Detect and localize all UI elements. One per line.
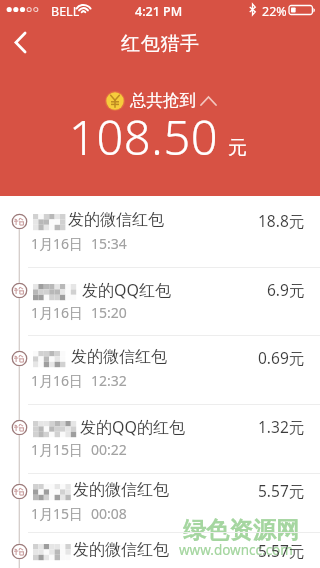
staticText: 1月16日 (31, 234, 84, 253)
staticText: 发的QQ红包 (82, 279, 171, 301)
button[interactable]: 发的QQ红包 (0, 269, 320, 324)
staticText: 1月15日 (31, 440, 84, 459)
button[interactable]: 发的微信红包 (0, 200, 320, 255)
staticText: 绿色资源网 (183, 516, 299, 545)
staticText: 5.57元 (258, 480, 305, 501)
staticText: 18.8元 (258, 210, 305, 231)
staticText: 总共抢到 (130, 90, 196, 111)
staticText: 00:22 (91, 440, 127, 459)
staticText: 1月16日 (31, 303, 84, 322)
button[interactable]: 发的微信红包 (0, 337, 320, 392)
staticText: BELL (51, 3, 80, 20)
staticText: 1月16日 (31, 371, 84, 390)
button[interactable]: 发的QQ的红包 (0, 406, 320, 461)
staticText: 15:34 (91, 234, 127, 253)
staticText: www.downcc.com (179, 541, 293, 559)
staticText: 红包猎手 (121, 32, 200, 56)
button[interactable]: 发的微信红包 (0, 530, 320, 568)
button[interactable]: 总共抢到 (105, 90, 216, 111)
staticText: 1月15日 (31, 504, 84, 523)
staticText: 发的微信红包 (68, 210, 164, 230)
staticText: 22% (262, 3, 287, 20)
staticText: 发的微信红包 (73, 540, 169, 560)
staticText: 6.9元 (267, 279, 305, 300)
staticText: 元 (228, 136, 247, 160)
staticText: 12:32 (91, 371, 127, 390)
button[interactable]: 发的微信红包 (0, 470, 320, 525)
staticText: 发的QQ的红包 (80, 416, 185, 438)
staticText: 108.50 (69, 105, 219, 169)
button[interactable]: Back (0, 20, 44, 64)
staticText: 4:21 PM (135, 3, 183, 20)
staticText: 5.57元 (258, 540, 305, 561)
staticText: 0.69元 (258, 347, 305, 368)
staticText: 1.32元 (258, 416, 305, 437)
staticText: 15:20 (91, 303, 127, 322)
staticText: 发的微信红包 (73, 480, 169, 500)
staticText: 00:08 (91, 504, 127, 523)
staticText: 发的微信红包 (71, 347, 167, 367)
